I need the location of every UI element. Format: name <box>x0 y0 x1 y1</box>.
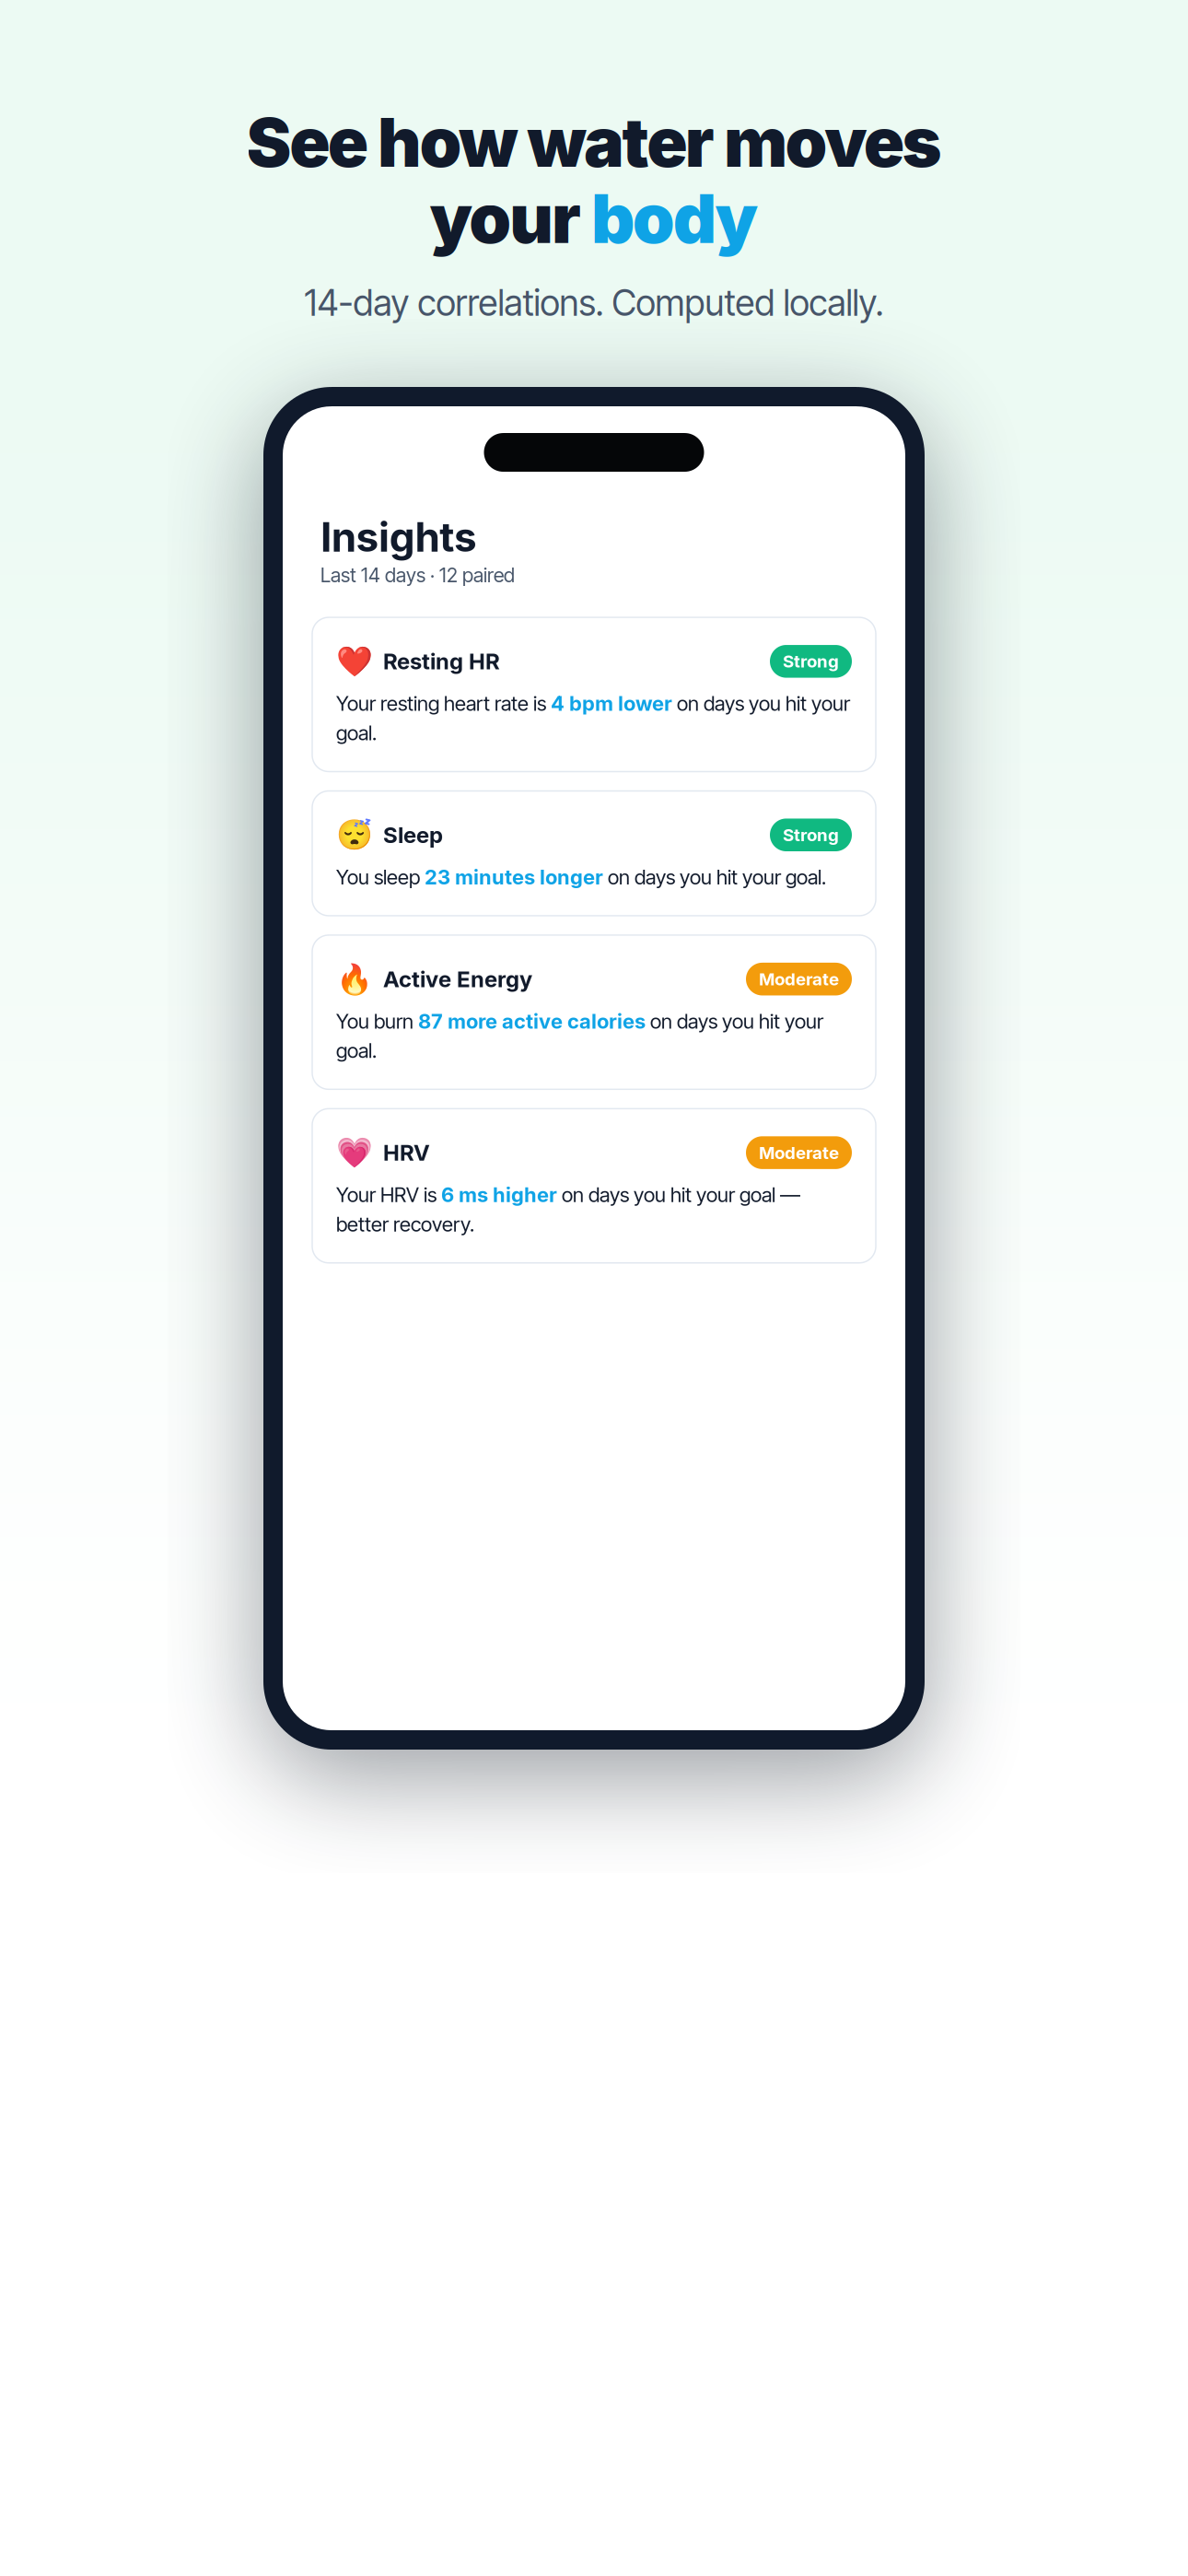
staticText: 14-day correlations. Computed locally. <box>304 281 884 324</box>
staticText: Strong <box>783 824 839 845</box>
button[interactable]: 😴 <box>312 791 876 916</box>
staticText: Moderate <box>759 1142 839 1163</box>
button[interactable]: 💗 <box>312 1109 876 1263</box>
button[interactable]: ❤️ <box>312 617 876 772</box>
staticText: your body <box>430 178 758 258</box>
staticText: 💗 <box>336 1135 373 1170</box>
staticText: You sleep 23 minutes longer on days you … <box>336 865 826 889</box>
staticText: Last 14 days · 12 paired <box>320 563 515 587</box>
staticText: You burn 87 more active calories on days… <box>336 1009 823 1063</box>
staticText: Active Energy <box>383 966 532 992</box>
staticText: Sleep <box>383 822 443 848</box>
button[interactable]: 🔥 <box>312 935 876 1089</box>
staticText: Resting HR <box>383 648 500 675</box>
staticText: See how water moves <box>246 101 942 183</box>
staticText: Your HRV is 6 ms higher on days you hit … <box>336 1183 800 1236</box>
staticText: HRV <box>383 1139 430 1166</box>
staticText: Your resting heart rate is 4 bpm lower o… <box>336 692 850 745</box>
staticText: ❤️ <box>336 644 373 679</box>
staticText: 🔥 <box>336 962 373 996</box>
staticText: 😴 <box>336 818 373 852</box>
staticText: Moderate <box>759 969 839 989</box>
staticText: Insights <box>320 512 477 561</box>
staticText: Strong <box>783 651 839 672</box>
